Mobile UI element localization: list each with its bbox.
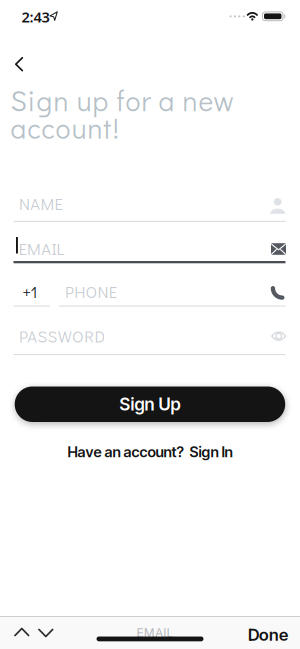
button[interactable]: Sign In: [189, 443, 232, 461]
staticText: Sign In: [189, 443, 232, 461]
staticText: Done: [248, 624, 288, 645]
button[interactable]: Done: [248, 624, 288, 645]
staticText: +1: [22, 280, 37, 302]
staticText: EMAIL: [136, 625, 174, 640]
button[interactable]: Sign Up: [15, 386, 285, 422]
staticText: EMAIL: [19, 237, 65, 259]
button[interactable]: Next field: [36, 625, 56, 639]
button[interactable]: Previous field: [12, 625, 32, 639]
staticText: NAME: [19, 192, 63, 214]
staticText: Sign Up: [119, 394, 180, 415]
staticText: account!: [10, 109, 118, 146]
staticText: Have an account?: [67, 443, 183, 461]
staticText: 2:43: [21, 7, 49, 26]
staticText: PASSWORD: [19, 325, 105, 347]
staticText: Sign up for a new: [10, 82, 233, 119]
staticText: PHONE: [65, 280, 117, 302]
button[interactable]: Back: [15, 57, 24, 71]
